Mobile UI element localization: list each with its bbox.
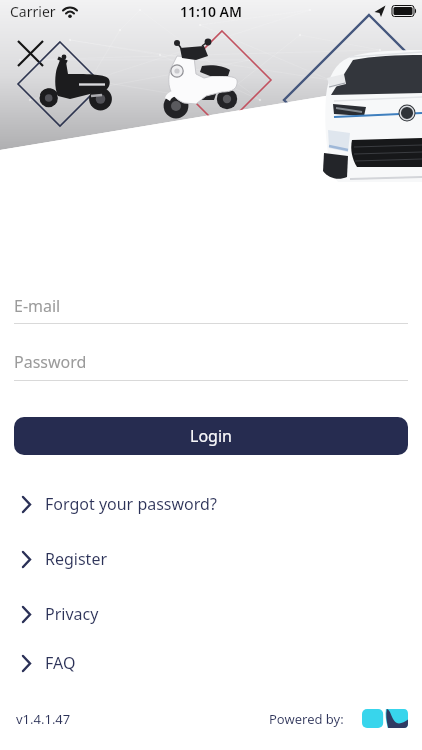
button[interactable]: Register bbox=[0, 544, 422, 574]
staticText: Login bbox=[190, 425, 232, 447]
button[interactable]: FAQ bbox=[0, 648, 422, 678]
staticText: Carrier bbox=[10, 2, 56, 21]
staticText: v1.4.1.47 bbox=[16, 710, 71, 728]
button[interactable]: Login bbox=[14, 417, 408, 455]
button[interactable]: Forgot your password? bbox=[0, 489, 422, 519]
staticText: 11:10 AM bbox=[180, 2, 242, 21]
staticText: Password bbox=[14, 351, 87, 373]
staticText: Privacy bbox=[45, 603, 99, 625]
staticText: Register bbox=[45, 548, 108, 570]
staticText: E-mail bbox=[14, 295, 61, 317]
staticText: Forgot your password? bbox=[45, 493, 217, 515]
button[interactable]: Privacy bbox=[0, 599, 422, 629]
staticText: Powered by: bbox=[269, 710, 344, 728]
staticText: FAQ bbox=[45, 652, 76, 674]
